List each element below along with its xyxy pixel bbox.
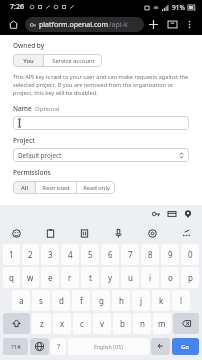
button[interactable]: g — [92, 290, 110, 311]
button[interactable]: 6 — [101, 244, 119, 265]
button[interactable]: i — [141, 267, 159, 288]
button[interactable]: platform.openai.com — [25, 17, 144, 32]
button[interactable]: v — [93, 313, 111, 334]
staticText: 3 — [48, 249, 53, 260]
button[interactable]: h — [112, 290, 130, 311]
staticText: c — [80, 318, 84, 329]
staticText: Permissions — [13, 168, 51, 177]
button[interactable]: b — [113, 313, 131, 334]
staticText: q — [9, 272, 14, 283]
button[interactable]: Voice — [110, 225, 126, 241]
staticText: 5 — [88, 249, 93, 260]
button[interactable]: Shift — [3, 313, 30, 334]
button[interactable]: Settings — [144, 225, 160, 241]
button[interactable]: n — [133, 313, 151, 334]
staticText: l — [180, 295, 183, 306]
staticText: You — [23, 57, 34, 65]
button[interactable]: Passwords — [148, 206, 164, 222]
staticText: Restricted — [42, 184, 70, 192]
button[interactable]: 5 — [81, 244, 99, 265]
button[interactable]: Comma — [151, 338, 170, 355]
button[interactable]: o — [161, 267, 179, 288]
button[interactable]: m — [153, 313, 171, 334]
button[interactable]: z — [32, 313, 51, 334]
button[interactable]: 2 — [22, 244, 39, 265]
staticText: ?1# — [11, 343, 21, 351]
button[interactable]: w — [22, 267, 39, 288]
button[interactable]: 7 — [121, 244, 139, 265]
button[interactable]: a — [12, 290, 30, 311]
button[interactable]: 3 — [41, 244, 59, 265]
staticText: z — [40, 318, 44, 329]
staticText: 91% — [172, 3, 185, 12]
staticText: 1 — [9, 249, 14, 260]
button[interactable]: ? — [51, 338, 66, 355]
staticText: 4 — [68, 249, 73, 260]
button[interactable]: Go — [172, 338, 199, 355]
staticText: Go — [181, 343, 190, 351]
button[interactable]: c — [73, 313, 91, 334]
button[interactable]: All — [13, 181, 35, 194]
button[interactable]: 1 — [3, 244, 20, 265]
staticText: All — [21, 184, 28, 192]
staticText: t — [89, 272, 92, 283]
staticText: 7:26 — [10, 2, 24, 12]
button[interactable]: l — [172, 290, 190, 311]
button[interactable]: 8 — [141, 244, 159, 265]
staticText: h — [119, 295, 124, 306]
button[interactable]: Emoji — [8, 225, 24, 241]
staticText: m — [158, 318, 166, 329]
button[interactable]: Payment methods — [164, 206, 180, 222]
staticText: f — [80, 295, 83, 306]
button[interactable]: Translate — [76, 225, 92, 241]
staticText: Owned by — [13, 41, 45, 50]
button[interactable]: Addresses — [180, 206, 196, 222]
button[interactable]: k — [152, 290, 170, 311]
staticText: Project — [13, 136, 35, 145]
button[interactable]: t — [81, 267, 99, 288]
button[interactable]: Restricted — [36, 181, 76, 194]
button[interactable]: Change keyboard — [30, 338, 49, 355]
button[interactable]: q — [3, 267, 20, 288]
button[interactable]: English (US) — [68, 338, 149, 355]
staticText: Name — [13, 104, 32, 113]
button[interactable]: New tab — [144, 15, 163, 34]
button[interactable]: ?1# — [3, 338, 28, 355]
staticText: a — [19, 295, 24, 306]
button[interactable]: Clipboard — [42, 225, 58, 241]
button[interactable]: 0 — [181, 244, 199, 265]
staticText: d — [59, 295, 64, 306]
staticText: y — [108, 272, 113, 283]
staticText: Default project — [18, 151, 62, 159]
button[interactable]: Service account — [44, 54, 102, 67]
button[interactable]: y — [101, 267, 119, 288]
button[interactable]: Read only — [77, 181, 115, 194]
button[interactable]: r — [61, 267, 79, 288]
staticText: platform.openai.com — [39, 20, 109, 30]
button[interactable]: e — [41, 267, 59, 288]
button[interactable]: 9 — [161, 244, 179, 265]
button[interactable]: j — [132, 290, 150, 311]
button[interactable]: More options — [182, 17, 197, 32]
button[interactable]: f — [72, 290, 90, 311]
button[interactable]: u — [121, 267, 139, 288]
staticText: Read only — [83, 184, 110, 192]
button[interactable]: More — [178, 225, 194, 241]
button[interactable]: s — [32, 290, 50, 311]
staticText: w — [27, 272, 34, 283]
button[interactable]: d — [52, 290, 70, 311]
button[interactable]: Home — [5, 16, 22, 33]
button[interactable]: Default project — [13, 148, 189, 162]
button[interactable]: Tabs — [163, 15, 182, 34]
button[interactable]: You — [13, 54, 43, 67]
staticText: 2 — [28, 249, 33, 260]
button[interactable]: x — [53, 313, 71, 334]
staticText: j — [140, 295, 143, 306]
button[interactable] — [13, 116, 189, 130]
staticText: 8 — [148, 249, 153, 260]
staticText: /api-k — [109, 20, 128, 30]
button[interactable]: p — [181, 267, 199, 288]
button[interactable]: 4 — [61, 244, 79, 265]
button[interactable]: Backspace — [173, 313, 199, 334]
staticText: o — [168, 272, 173, 283]
